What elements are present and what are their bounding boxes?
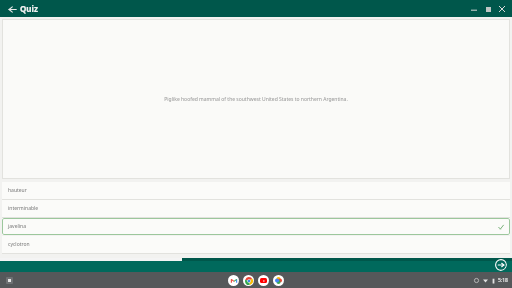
staticText: Quiz xyxy=(20,3,38,14)
button[interactable]: Gmail xyxy=(228,275,239,286)
button[interactable]: Launcher xyxy=(4,275,14,285)
button[interactable]: Close xyxy=(495,2,509,16)
staticText: interminable xyxy=(8,205,39,212)
staticText: 5:18 xyxy=(498,277,508,284)
button[interactable]: hauteur xyxy=(2,182,510,199)
button[interactable]: System status xyxy=(474,277,508,284)
button[interactable]: YouTube xyxy=(258,275,269,286)
staticText: cyclotron xyxy=(8,241,30,248)
button[interactable]: Back xyxy=(4,1,20,17)
staticText: Piglike hoofed mammal of the southwest U… xyxy=(164,96,348,103)
button[interactable]: cyclotron xyxy=(2,236,510,253)
staticText: hauteur xyxy=(8,187,27,194)
button[interactable]: Maximize xyxy=(481,2,495,16)
button[interactable]: Chrome xyxy=(243,275,254,286)
button[interactable]: Photos xyxy=(273,275,284,286)
button[interactable]: interminable xyxy=(2,200,510,217)
button[interactable]: Next question xyxy=(494,258,507,271)
button[interactable]: javelina xyxy=(2,218,510,235)
staticText: javelina xyxy=(8,223,26,230)
button[interactable]: Minimize xyxy=(467,2,481,16)
